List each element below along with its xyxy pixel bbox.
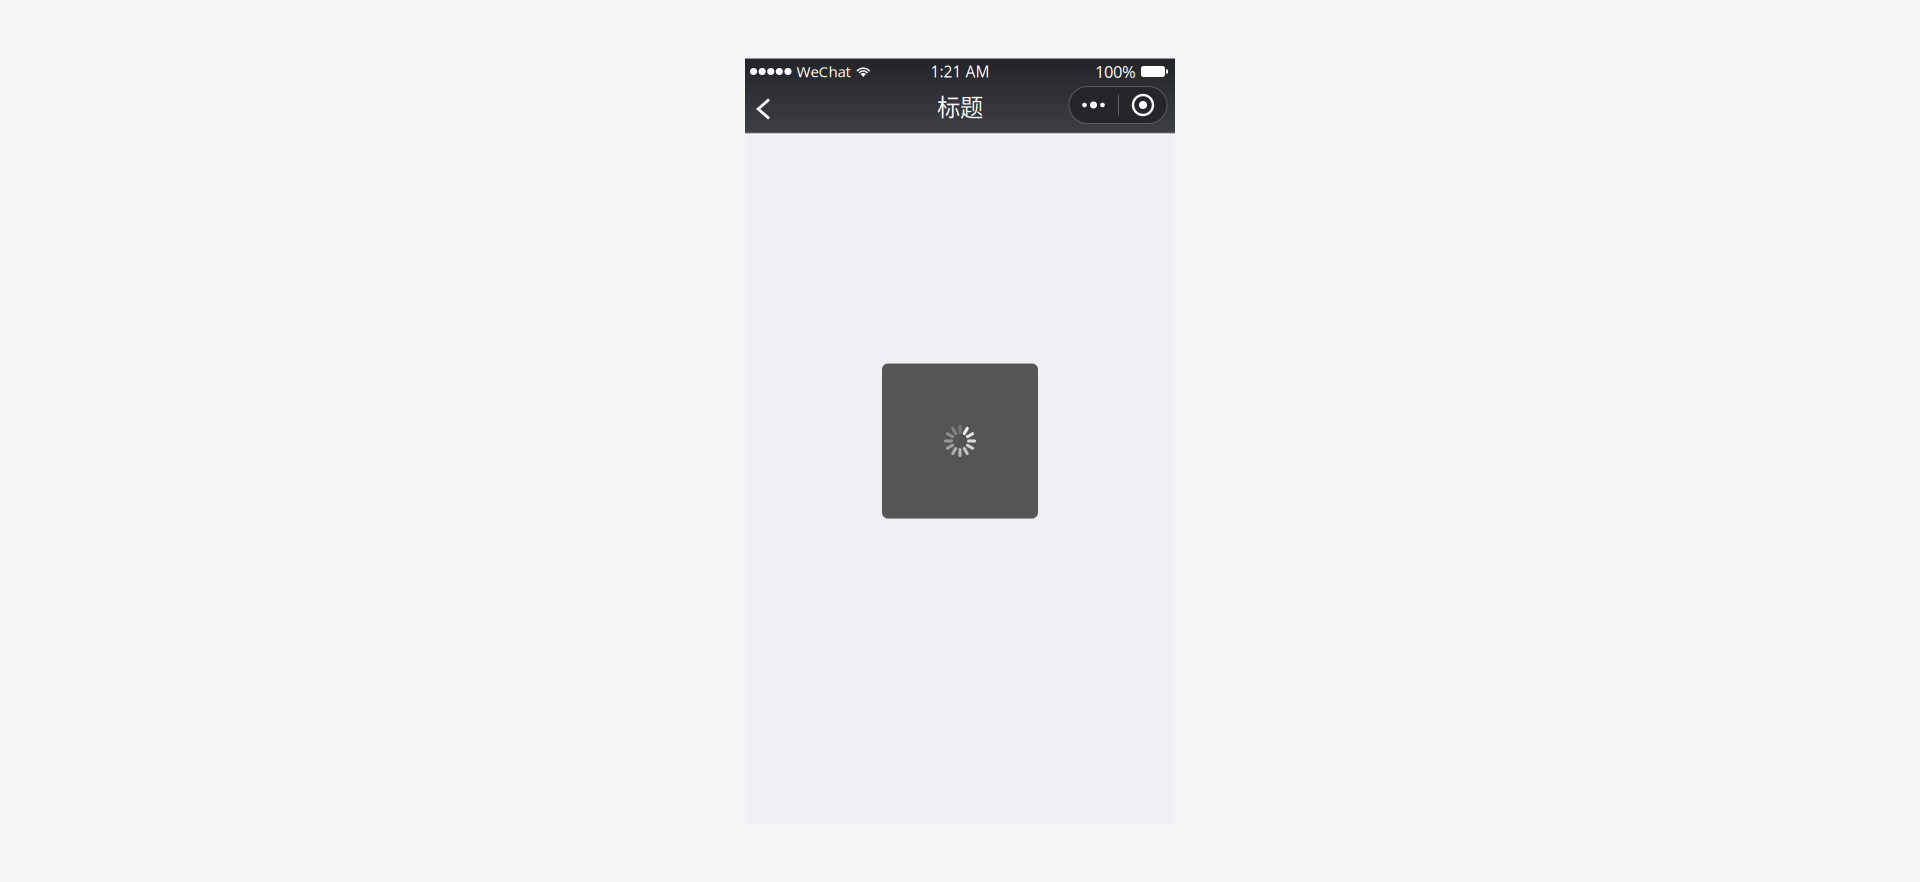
staticText: 标题 bbox=[937, 89, 983, 123]
button[interactable]: Back bbox=[745, 89, 788, 132]
staticText: 1:21 AM bbox=[930, 61, 989, 82]
staticText: 100% bbox=[1095, 60, 1136, 83]
staticText: WeChat bbox=[796, 61, 850, 82]
button[interactable]: More options bbox=[1069, 89, 1175, 132]
